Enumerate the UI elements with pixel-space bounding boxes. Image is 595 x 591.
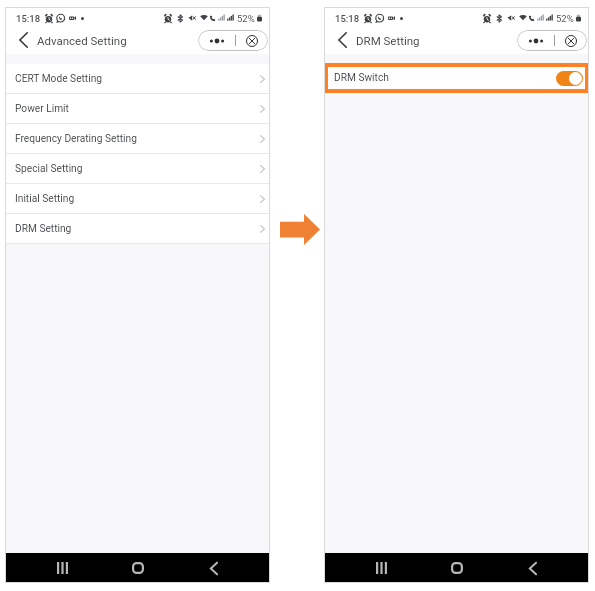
button[interactable]: DRM Switch toggle <box>556 71 583 86</box>
button[interactable]: DRM Setting <box>5 214 270 243</box>
button[interactable]: CERT Mode Setting <box>5 64 270 93</box>
button[interactable]: DRM Switch <box>328 67 585 89</box>
button[interactable]: Home <box>419 553 495 583</box>
button[interactable]: Back <box>14 31 32 49</box>
button[interactable]: Initial Setting <box>5 184 270 213</box>
button[interactable]: Recents <box>344 553 419 583</box>
button[interactable]: Back <box>333 31 351 49</box>
staticText: 52% <box>237 13 255 24</box>
button[interactable]: More options <box>198 30 235 51</box>
button[interactable]: Close <box>236 30 268 51</box>
button[interactable]: Close <box>555 30 587 51</box>
staticText: Advanced Setting <box>37 34 127 47</box>
button[interactable]: Back <box>176 553 252 583</box>
button[interactable]: More options <box>517 30 554 51</box>
staticText: 52% <box>556 13 574 24</box>
button[interactable]: Recents <box>25 553 100 583</box>
staticText: Initial Setting <box>15 193 75 205</box>
staticText: DRM Switch <box>334 72 389 84</box>
staticText: DRM Setting <box>356 34 420 47</box>
button[interactable]: Power Limit <box>5 94 270 123</box>
staticText: Special Setting <box>15 163 83 175</box>
staticText: DRM Setting <box>15 223 72 235</box>
button[interactable]: Special Setting <box>5 154 270 183</box>
staticText: 15:18 <box>16 13 41 24</box>
button[interactable]: Back <box>495 553 571 583</box>
staticText: Frequency Derating Setting <box>15 133 137 145</box>
staticText: Power Limit <box>15 103 69 115</box>
staticText: CERT Mode Setting <box>15 73 103 85</box>
button[interactable]: Home <box>100 553 176 583</box>
staticText: 15:18 <box>335 13 360 24</box>
button[interactable]: Frequency Derating Setting <box>5 124 270 153</box>
